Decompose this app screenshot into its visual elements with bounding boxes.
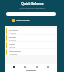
button[interactable]: Checking bbox=[6, 28, 56, 34]
staticText: Checking bbox=[9, 29, 18, 32]
button[interactable]: Cards bbox=[23, 65, 27, 69]
staticText: Savings bbox=[9, 36, 17, 39]
staticText: -320.45 bbox=[9, 46, 16, 48]
staticText: 8,730.12 bbox=[9, 39, 17, 41]
button[interactable]: Profile bbox=[46, 65, 50, 69]
button[interactable]: Stats bbox=[35, 65, 39, 69]
staticText: Credit bbox=[9, 43, 15, 46]
staticText: Total balance bbox=[16, 19, 30, 22]
button[interactable]: Investments bbox=[6, 49, 56, 55]
staticText: 1,240.00 bbox=[9, 32, 17, 34]
staticText: Quick Balance bbox=[21, 2, 44, 6]
button[interactable]: Credit bbox=[6, 42, 56, 48]
button[interactable] bbox=[6, 12, 56, 16]
staticText: All accounts in one place bbox=[19, 7, 45, 10]
staticText: 12,980.00 bbox=[9, 53, 18, 55]
button[interactable]: Savings bbox=[6, 35, 56, 41]
staticText: Investments bbox=[9, 50, 21, 53]
button[interactable]: Home bbox=[12, 65, 16, 69]
